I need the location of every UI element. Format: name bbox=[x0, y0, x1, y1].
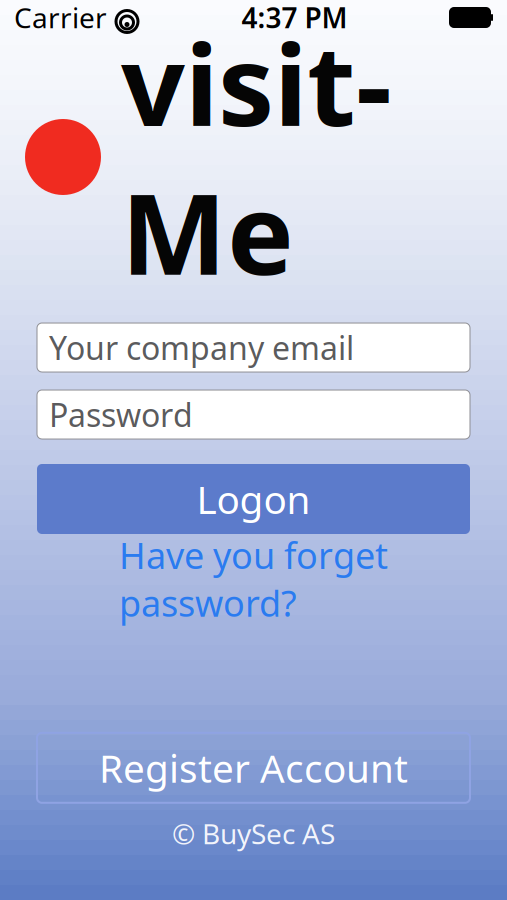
button[interactable]: Logon bbox=[37, 464, 470, 534]
staticText: © BuySec AS bbox=[172, 815, 335, 852]
staticText: Register Account bbox=[99, 742, 408, 793]
button[interactable]: Register Account bbox=[37, 733, 470, 803]
staticText: Password bbox=[49, 393, 193, 436]
button[interactable]: Have you forget password? bbox=[37, 561, 470, 597]
staticText: Carrier bbox=[14, 0, 107, 36]
staticText: visitMe bbox=[121, 8, 392, 306]
staticText: Have you forget password? bbox=[119, 531, 388, 627]
staticText: 4:37 PM bbox=[241, 0, 347, 36]
staticText: Logon bbox=[196, 473, 310, 525]
staticText: Your company email bbox=[49, 326, 354, 369]
